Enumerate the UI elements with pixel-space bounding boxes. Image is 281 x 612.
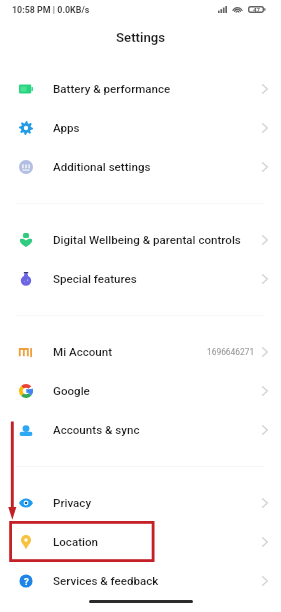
button[interactable]: Battery & performance	[0, 69, 281, 108]
button[interactable]: Apps	[0, 108, 281, 147]
button[interactable]: Digital Wellbeing & parental controls	[0, 220, 281, 259]
staticText: Special features	[53, 272, 137, 286]
staticText: 10:58 PM | 0.0KB/s	[12, 5, 90, 15]
button[interactable]: Accounts & sync	[0, 410, 281, 449]
staticText: Privacy	[53, 496, 92, 510]
button[interactable]: Location	[0, 522, 281, 561]
button[interactable]: Services & feedback	[0, 561, 281, 600]
staticText: ?	[24, 576, 29, 587]
staticText: Battery & performance	[53, 82, 171, 96]
button[interactable]: Special features	[0, 259, 281, 298]
staticText: Location	[53, 535, 98, 549]
staticText: Google	[53, 384, 90, 398]
button[interactable]: Mi Account	[0, 332, 281, 371]
staticText: Settings	[116, 30, 166, 45]
button[interactable]: Privacy	[0, 483, 281, 522]
staticText: Services & feedback	[53, 574, 159, 588]
staticText: Accounts & sync	[53, 423, 140, 437]
staticText: Additional settings	[53, 160, 151, 174]
staticText: 1696646271	[207, 347, 255, 357]
staticText: Mi Account	[53, 345, 113, 359]
button[interactable]: Additional settings	[0, 147, 281, 186]
staticText: Apps	[53, 121, 80, 135]
button[interactable]: Google	[0, 371, 281, 410]
staticText: 47	[253, 6, 260, 13]
staticText: Digital Wellbeing & parental controls	[53, 233, 241, 247]
